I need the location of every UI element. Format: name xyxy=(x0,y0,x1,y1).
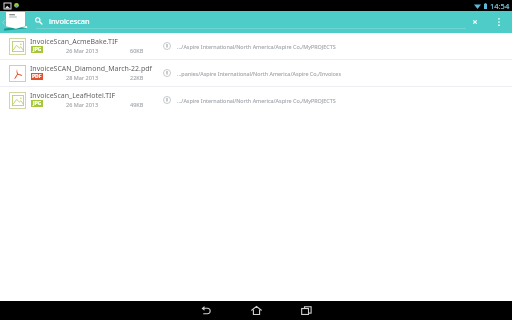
staticText: InvoiceScan_AcmeBake.TIF xyxy=(30,37,118,47)
staticText: JPG xyxy=(33,46,42,53)
staticText: 26 Mar 2013 xyxy=(66,101,99,108)
button[interactable]: Recent apps xyxy=(297,301,316,320)
button[interactable]: File info xyxy=(160,66,174,80)
button[interactable]: InvoiceSCAN_Diamond_March-22.pdf xyxy=(0,60,512,86)
button[interactable]: File info xyxy=(160,39,174,53)
staticText: 14:54 xyxy=(490,1,510,11)
staticText: ...panies/Aspire International/North Ame… xyxy=(177,70,342,77)
staticText: .../Aspire International/North America/A… xyxy=(177,43,336,50)
staticText: invoicescan xyxy=(49,16,90,26)
button[interactable]: Back xyxy=(197,301,216,320)
staticText: JPG xyxy=(33,100,42,107)
button[interactable]: Clear search xyxy=(465,12,485,32)
button[interactable]: InvoiceScan_LeafHotel.TIF xyxy=(0,87,512,113)
staticText: 49KB xyxy=(130,101,144,108)
staticText: InvoiceScan_LeafHotel.TIF xyxy=(30,91,116,101)
button[interactable]: Home xyxy=(247,301,266,320)
staticText: 28 Mar 2013 xyxy=(66,74,99,81)
staticText: 22KB xyxy=(130,74,144,81)
button[interactable]: File info xyxy=(160,93,174,107)
button[interactable]: More options xyxy=(490,13,508,31)
staticText: PDF xyxy=(32,73,42,80)
staticText: InvoiceSCAN_Diamond_March-22.pdf xyxy=(30,64,153,74)
staticText: 60KB xyxy=(130,47,144,54)
staticText: 26 Mar 2013 xyxy=(66,47,99,54)
button[interactable]: Navigate up xyxy=(0,11,28,33)
button[interactable]: InvoiceScan_AcmeBake.TIF xyxy=(0,33,512,59)
staticText: .../Aspire International/North America/A… xyxy=(177,97,336,104)
